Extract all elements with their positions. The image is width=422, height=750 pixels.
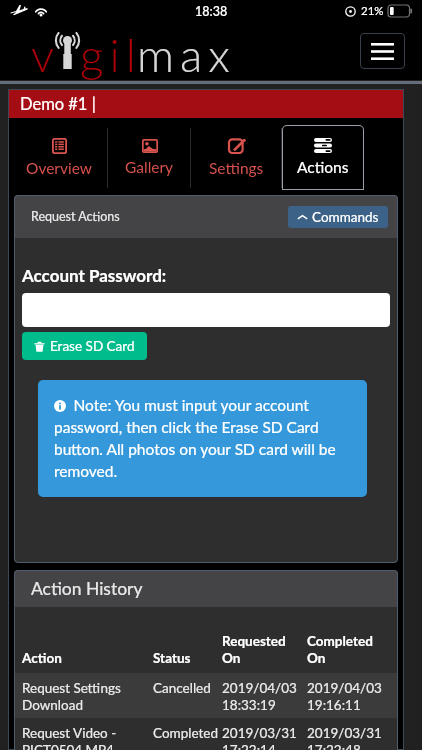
staticText: Commands	[312, 209, 379, 225]
staticText: Cancelled	[153, 680, 222, 696]
staticText: Status	[153, 650, 222, 666]
staticText: 21%	[361, 4, 384, 18]
button[interactable]: Menu	[360, 33, 405, 69]
staticText: 18:38	[195, 4, 228, 19]
staticText: Action	[22, 650, 153, 666]
button[interactable]: Gallery	[108, 125, 191, 190]
button[interactable]: Actions	[282, 125, 364, 190]
staticText: Overview	[26, 159, 92, 178]
staticText: Actions	[297, 158, 349, 177]
staticText: 2019/03/31 17:22:14	[222, 725, 307, 750]
staticText: 2019/03/31 17:22:48	[307, 725, 392, 750]
staticText: Completed On	[307, 633, 392, 666]
staticText: gil	[80, 27, 142, 82]
staticText: 2019/04/03 18:33:19	[222, 680, 307, 713]
staticText: Requested On	[222, 633, 307, 666]
staticText: Demo #1 |	[20, 94, 96, 114]
staticText: v	[31, 27, 61, 82]
staticText: Action History	[31, 578, 143, 599]
staticText: Note: You must input your account passwo…	[54, 396, 357, 480]
button[interactable]: Commands	[288, 206, 388, 228]
staticText: Request Video - PICT0504.MP4	[22, 725, 153, 750]
button[interactable]: Overview	[9, 125, 108, 190]
staticText: max	[137, 27, 236, 82]
button[interactable]: Erase SD Card	[22, 332, 147, 360]
staticText: Request Settings Download	[22, 680, 153, 713]
staticText: 2019/04/03 19:16:11	[307, 680, 392, 713]
button[interactable]: Settings	[191, 125, 282, 190]
staticText: Erase SD Card	[50, 338, 135, 354]
staticText: Settings	[209, 159, 264, 178]
staticText: Account Password:	[22, 265, 167, 285]
staticText: Request Actions	[31, 209, 120, 224]
staticText: Completed	[153, 725, 222, 741]
staticText: Gallery	[125, 158, 174, 177]
